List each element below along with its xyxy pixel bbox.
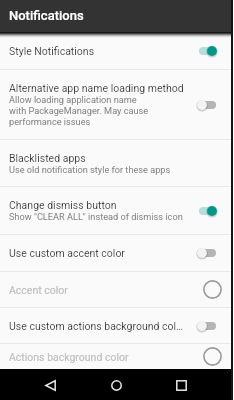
staticText: Use custom accent color: [9, 247, 125, 259]
staticText: Blacklisted apps: [9, 152, 86, 164]
button[interactable]: Use custom actions background color: [0, 308, 232, 343]
button[interactable]: Alternative app name loading method: [0, 70, 232, 139]
button[interactable]: Home: [106, 375, 126, 395]
staticText: Allow loading application name with Pack…: [9, 94, 149, 127]
staticText: Style Notifications: [9, 45, 95, 57]
button[interactable]: Actions background color: [0, 344, 232, 369]
button[interactable]: Use custom accent color: [0, 235, 232, 271]
button[interactable]: Back: [40, 375, 60, 395]
staticText: Show "CLEAR ALL" instead of dismiss icon: [9, 211, 183, 222]
staticText: Change dismiss button: [9, 199, 117, 211]
button[interactable]: Recent apps: [171, 375, 191, 395]
staticText: Accent color: [9, 284, 68, 296]
staticText: Notifications: [9, 8, 84, 23]
button[interactable]: Notifications: [0, 0, 232, 32]
button[interactable]: Change dismiss button: [0, 187, 232, 234]
staticText: Use custom actions background color: [9, 320, 184, 332]
button[interactable]: Accent color: [0, 272, 232, 307]
staticText: Alternative app name loading method: [9, 82, 184, 94]
button[interactable]: Blacklisted apps: [0, 140, 232, 186]
staticText: Actions background color: [9, 351, 129, 363]
button[interactable]: Style Notifications: [0, 32, 232, 69]
staticText: Use old notification style for these app…: [9, 164, 171, 175]
